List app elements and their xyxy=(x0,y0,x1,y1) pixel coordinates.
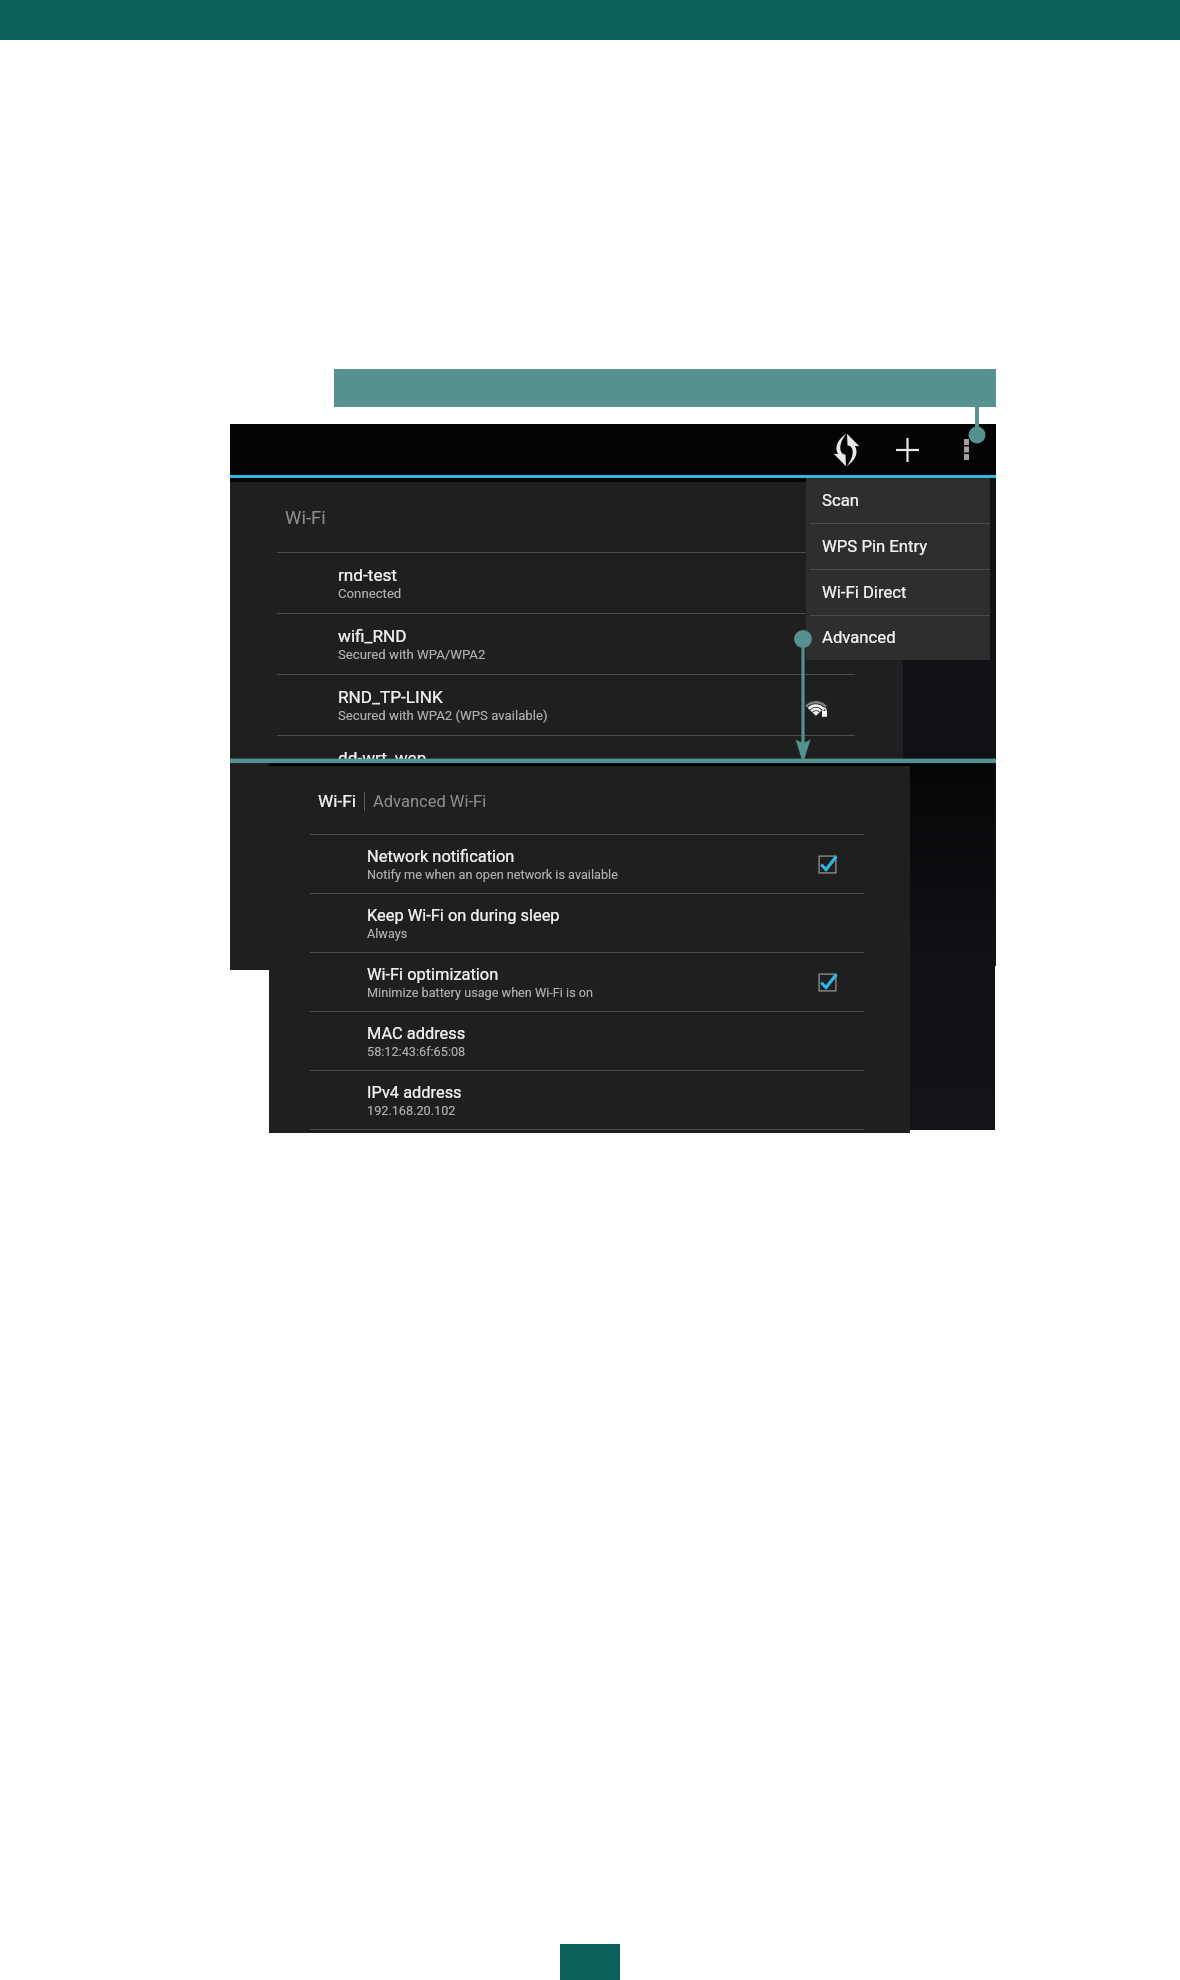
staticText: wifi_RND xyxy=(338,626,407,646)
staticText: Secured with WPA2 (WPS available) xyxy=(338,708,548,723)
staticText: Connected xyxy=(338,586,402,601)
button[interactable]: IPv4 address xyxy=(269,1071,910,1130)
button[interactable]: RND_TP-LINK xyxy=(230,675,903,736)
staticText: RND_TP-LINK xyxy=(338,687,443,707)
button[interactable]: dd-wrt_wep xyxy=(230,736,903,797)
staticText: Advanced xyxy=(822,628,896,648)
staticText: Notify me when an open network is availa… xyxy=(367,867,618,882)
button[interactable]: Network notification xyxy=(269,835,910,894)
staticText: Secured with WPA/WPA2 xyxy=(338,647,486,662)
staticText: rnd-test xyxy=(338,565,397,585)
staticText: Network notification xyxy=(367,847,515,866)
staticText: IPv4 address xyxy=(367,1083,462,1102)
button[interactable]: Scan xyxy=(806,478,990,524)
staticText: WPS Pin Entry xyxy=(822,537,928,557)
staticText: Wi-Fi Direct xyxy=(822,583,907,603)
staticText: 192.168.20.102 xyxy=(367,1103,456,1118)
staticText: Wi-Fi xyxy=(285,507,326,529)
button[interactable]: rnd-test xyxy=(230,553,903,614)
staticText: Wi-Fi optimization xyxy=(367,965,499,984)
button[interactable]: MAC address xyxy=(269,1012,910,1071)
button[interactable]: wifi_RND xyxy=(230,614,903,675)
button[interactable]: Advanced xyxy=(806,616,990,660)
button[interactable]: Scan xyxy=(816,424,877,475)
button[interactable]: Keep Wi-Fi on during sleep xyxy=(269,894,910,953)
button[interactable]: Wi-Fi optimization xyxy=(269,953,910,1012)
button[interactable]: More options xyxy=(937,424,996,475)
staticText: 58:12:43:6f:65:08 xyxy=(367,1044,466,1059)
staticText: Wi-Fi xyxy=(318,791,356,811)
button[interactable]: Add network xyxy=(877,424,937,475)
staticText: Scan xyxy=(822,491,859,511)
staticText: dd-wrt_wep xyxy=(338,748,427,768)
staticText: Minimize battery usage when Wi-Fi is on xyxy=(367,985,594,1000)
button[interactable]: Wi-Fi Direct xyxy=(806,570,990,616)
staticText: Advanced Wi-Fi xyxy=(373,792,487,811)
staticText: Always xyxy=(367,926,408,941)
staticText: Keep Wi-Fi on during sleep xyxy=(367,906,560,925)
button[interactable]: WPS Pin Entry xyxy=(806,524,990,570)
staticText: MAC address xyxy=(367,1024,466,1043)
